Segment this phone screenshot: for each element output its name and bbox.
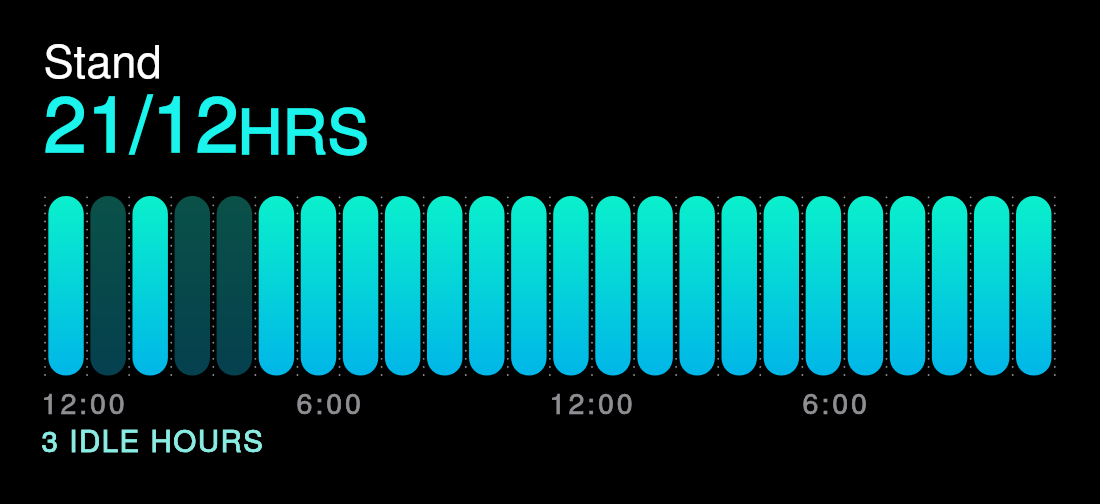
button[interactable]: Hourly stand chart, 24 hours	[40, 190, 1060, 380]
button[interactable]: Stand, 21 of 12 hours	[40, 30, 380, 160]
button[interactable]: Stand, 21 of 12 hours, hourly chart	[0, 0, 1100, 504]
button[interactable]: 3 idle hours	[40, 424, 270, 458]
